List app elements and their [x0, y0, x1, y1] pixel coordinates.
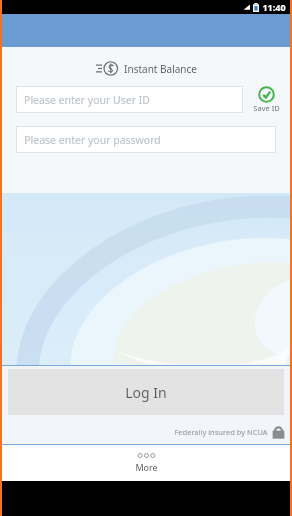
staticText: Please enter your User ID [24, 93, 150, 107]
staticText: 11:40 [262, 1, 286, 13]
button[interactable]: Please enter your password [16, 126, 276, 153]
staticText: Federally insured by NCUA [174, 427, 268, 437]
staticText: Please enter your password [24, 133, 161, 147]
button[interactable]: Please enter your User ID [16, 86, 243, 113]
button[interactable]: Instant Balance [2, 58, 290, 79]
button[interactable]: More [2, 445, 290, 481]
button[interactable]: Log In [8, 369, 284, 415]
staticText: Save ID [253, 103, 280, 113]
staticText: Log In [125, 383, 167, 402]
staticText: More [135, 461, 158, 473]
staticText: Instant Balance [124, 62, 197, 76]
button[interactable]: Save ID [249, 86, 283, 113]
